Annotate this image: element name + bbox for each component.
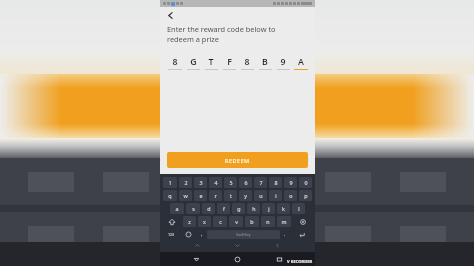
staticText: u	[259, 192, 263, 199]
button[interactable]: .	[280, 228, 290, 241]
button[interactable]: Recents	[274, 254, 285, 265]
button[interactable]: j	[262, 203, 275, 214]
button[interactable]: T	[202, 54, 220, 70]
staticText: 2	[184, 179, 188, 186]
button[interactable]: 4	[209, 177, 222, 188]
button[interactable]: g	[232, 203, 245, 214]
staticText: j	[268, 205, 270, 212]
button[interactable]: 9	[284, 177, 297, 188]
staticText: ,	[201, 231, 203, 238]
button[interactable]: Backspace	[293, 216, 312, 227]
button[interactable]: 3	[194, 177, 207, 188]
staticText: g	[237, 205, 241, 212]
staticText: 9	[289, 179, 293, 186]
staticText: F	[227, 56, 232, 68]
button[interactable]: l	[292, 203, 305, 214]
staticText: c	[219, 218, 222, 225]
staticText: l	[298, 205, 300, 212]
button[interactable]: s	[186, 203, 200, 214]
button[interactable]: Scroll down	[233, 241, 242, 250]
staticText: B	[262, 56, 268, 68]
staticText: 123	[168, 232, 175, 237]
button[interactable]: n	[261, 216, 275, 227]
button[interactable]: ,	[197, 228, 207, 241]
button[interactable]: 8	[238, 54, 256, 70]
button[interactable]: p	[299, 190, 312, 201]
staticText: h	[252, 205, 256, 212]
button[interactable]: r	[209, 190, 222, 201]
button[interactable]: 5	[224, 177, 237, 188]
staticText: 5	[229, 179, 233, 186]
button[interactable]: Emoji	[181, 229, 196, 240]
button[interactable]: t	[224, 190, 237, 201]
button[interactable]: w	[179, 190, 192, 201]
staticText: 4	[214, 179, 218, 186]
button[interactable]: 8	[165, 54, 184, 70]
staticText: 0	[304, 179, 308, 186]
staticText: n	[266, 218, 270, 225]
staticText: k	[282, 205, 285, 212]
button[interactable]: G	[184, 54, 202, 70]
button[interactable]: y	[239, 190, 252, 201]
staticText: T	[208, 56, 214, 68]
button[interactable]: F	[220, 54, 238, 70]
button[interactable]: 0	[299, 177, 312, 188]
button[interactable]: Shift	[163, 216, 181, 227]
staticText: 8	[172, 56, 178, 68]
button[interactable]: 6	[239, 177, 252, 188]
staticText: 3	[199, 179, 203, 186]
button[interactable]: d	[202, 203, 215, 214]
button[interactable]: h	[247, 203, 260, 214]
button[interactable]: q	[163, 190, 177, 201]
button[interactable]: 1	[163, 177, 177, 188]
staticText: m	[281, 218, 287, 225]
button[interactable]: Previous	[273, 241, 282, 250]
staticText: 1	[168, 179, 172, 186]
button[interactable]: z	[183, 216, 196, 227]
button[interactable]: REDEEM	[167, 152, 308, 168]
button[interactable]: Back	[164, 9, 177, 22]
button[interactable]: u	[254, 190, 267, 201]
staticText: e	[199, 192, 203, 199]
staticText: SwiftKey	[236, 232, 251, 237]
button[interactable]: a	[170, 203, 184, 214]
staticText: 8	[274, 179, 278, 186]
button[interactable]: Back	[191, 254, 202, 265]
staticText: G	[190, 56, 197, 68]
button[interactable]: SwiftKey	[207, 230, 280, 239]
button[interactable]: m	[277, 216, 291, 227]
button[interactable]: b	[245, 216, 259, 227]
button[interactable]: x	[198, 216, 211, 227]
staticText: .	[284, 231, 286, 238]
button[interactable]: c	[213, 216, 227, 227]
button[interactable]: A	[292, 54, 310, 70]
staticText: r	[214, 192, 217, 199]
staticText: 8	[244, 56, 250, 68]
button[interactable]: v	[229, 216, 243, 227]
button[interactable]: Home	[232, 254, 243, 265]
button[interactable]: Symbols	[162, 228, 180, 241]
button[interactable]: k	[277, 203, 290, 214]
staticText: f	[223, 205, 225, 212]
staticText: b	[250, 218, 254, 225]
staticText: 6	[244, 179, 248, 186]
button[interactable]: 9	[274, 54, 292, 70]
staticText: V RECORDER	[287, 259, 313, 265]
button[interactable]: Enter	[291, 229, 312, 240]
staticText: x	[203, 218, 206, 225]
staticText: Enter the reward code below to redeem a …	[167, 24, 301, 44]
staticText: i	[275, 192, 277, 199]
button[interactable]: 7	[254, 177, 267, 188]
button[interactable]: 8	[269, 177, 282, 188]
button[interactable]: f	[217, 203, 230, 214]
button[interactable]: e	[194, 190, 207, 201]
button[interactable]: i	[269, 190, 282, 201]
staticText: o	[289, 192, 293, 199]
button[interactable]: B	[256, 54, 274, 70]
staticText: 9	[280, 56, 286, 68]
staticText: 7	[259, 179, 263, 186]
button[interactable]: Scroll up	[193, 241, 202, 250]
button[interactable]: 2	[179, 177, 192, 188]
button[interactable]: o	[284, 190, 297, 201]
staticText: z	[188, 218, 191, 225]
